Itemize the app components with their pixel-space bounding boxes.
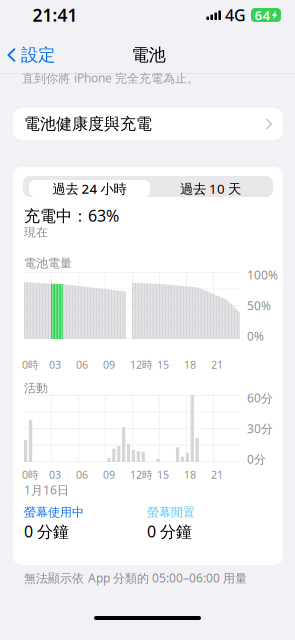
staticText: 活動 [24, 381, 48, 396]
staticText: 0 分鐘 [147, 521, 192, 542]
staticText: 0分 [247, 451, 266, 467]
button[interactable]: 設定 [0, 40, 61, 70]
staticText: 螢幕閒置 [147, 505, 195, 520]
staticText: 60分 [247, 390, 273, 406]
staticText: 0時 [22, 357, 39, 372]
staticText: 21 [211, 467, 223, 482]
staticText: 過去 10 天 [180, 180, 241, 197]
staticText: 15 [157, 357, 169, 372]
staticText: 電池電量 [24, 256, 72, 271]
staticText: 03 [49, 357, 61, 372]
staticText: 1月16日 [24, 482, 69, 498]
staticText: 0時 [22, 467, 39, 482]
staticText: 電池 [131, 44, 165, 66]
staticText: 09 [103, 467, 115, 482]
staticText: 64 [254, 6, 270, 24]
staticText: 設定 [21, 44, 55, 66]
staticText: 18 [184, 357, 196, 372]
staticText: 0% [247, 328, 264, 344]
button[interactable]: 過去 10 天 [150, 180, 271, 197]
staticText: 06 [76, 357, 88, 372]
staticText: 直到你將 iPhone 完全充電為止。 [22, 70, 199, 86]
staticText: 30分 [247, 420, 273, 436]
staticText: 06 [76, 467, 88, 482]
staticText: 50% [247, 297, 271, 313]
staticText: 15 [157, 467, 169, 482]
staticText: 螢幕使用中 [24, 505, 84, 520]
staticText: 03 [49, 467, 61, 482]
staticText: 無法顯示依 App 分類的 05:00–06:00 用量 [24, 570, 247, 586]
staticText: 21:41 [32, 3, 77, 26]
staticText: 過去 24 小時 [52, 180, 126, 197]
button[interactable]: 電池健康度與充電 [13, 108, 283, 140]
staticText: 18 [184, 467, 196, 482]
staticText: 電池健康度與充電 [24, 114, 152, 134]
staticText: 12時 [130, 467, 153, 482]
staticText: 4G [225, 4, 246, 26]
staticText: 充電中：63% [24, 205, 119, 226]
staticText: 現在 [24, 225, 48, 240]
staticText: 100% [247, 267, 278, 283]
staticText: 09 [103, 357, 115, 372]
button[interactable]: 過去 24 小時 [29, 180, 150, 197]
staticText: 12時 [130, 357, 153, 372]
staticText: 21 [211, 357, 223, 372]
staticText: 0 分鐘 [24, 521, 69, 542]
